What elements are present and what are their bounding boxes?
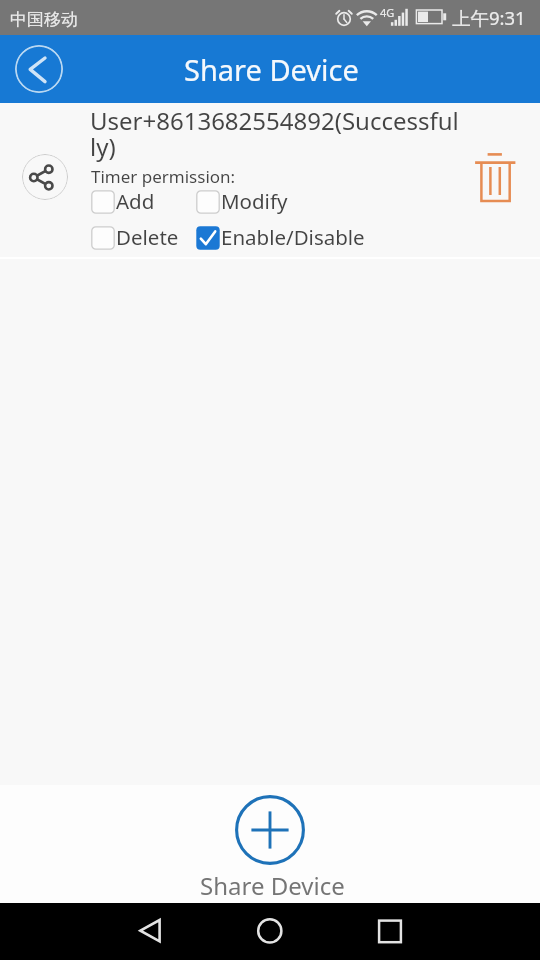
staticText: Delete — [116, 223, 179, 251]
button[interactable]: Back — [120, 903, 180, 960]
button[interactable]: Back — [15, 45, 63, 93]
button[interactable]: Recents — [360, 903, 420, 960]
button[interactable]: Enable/Disable — [196, 226, 364, 254]
staticText: Timer permission: — [91, 165, 236, 188]
staticText: 上午9:31 — [452, 5, 526, 30]
button[interactable]: Delete — [470, 145, 520, 205]
staticText: Share Device — [184, 50, 359, 89]
button[interactable]: Delete — [91, 226, 178, 254]
staticText: 4G — [380, 5, 395, 20]
staticText: ly) — [90, 130, 116, 163]
staticText: Modify — [221, 187, 288, 215]
button[interactable]: Add — [91, 190, 154, 218]
staticText: Share Device — [200, 869, 345, 902]
staticText: User+8613682554892(Successful — [90, 104, 459, 137]
staticText: Add — [116, 187, 155, 215]
button[interactable]: Modify — [196, 190, 287, 218]
button[interactable]: Share Device — [180, 791, 360, 901]
staticText: Enable/Disable — [221, 223, 365, 251]
button[interactable]: Share — [22, 154, 68, 200]
button[interactable]: Home — [240, 903, 300, 960]
staticText: 中国移动 — [10, 9, 78, 30]
